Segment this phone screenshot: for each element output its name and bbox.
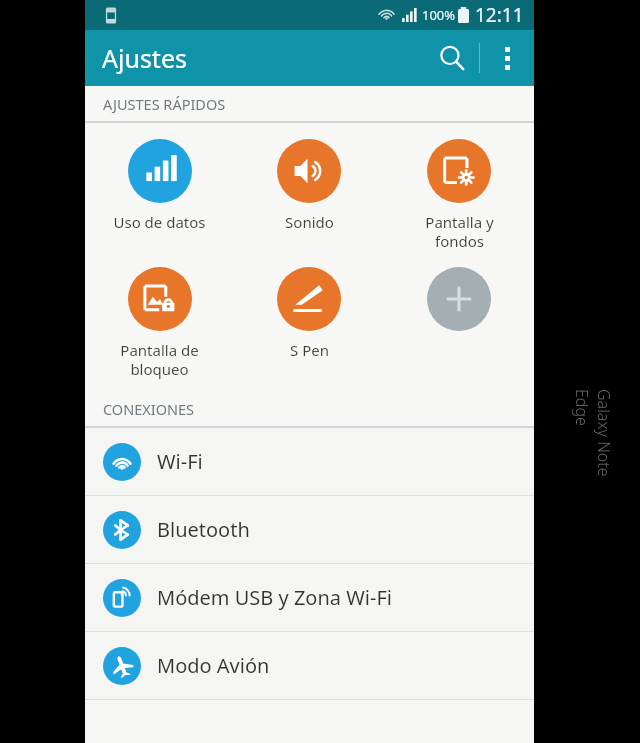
staticText: Galaxy Note Edge <box>571 389 615 495</box>
button[interactable]: S Pen <box>234 265 384 360</box>
staticText: Pantalla de bloqueo <box>120 340 199 379</box>
button[interactable]: Módem USB y Zona Wi-Fi <box>85 564 534 631</box>
staticText: S Pen <box>290 340 329 360</box>
button[interactable]: Uso de datos <box>85 137 234 232</box>
button[interactable]: Buscar <box>425 31 479 85</box>
button[interactable]: Wi-Fi <box>85 428 534 495</box>
button[interactable]: Sonido <box>234 137 384 232</box>
staticText: AJUSTES RÁPIDOS <box>103 94 226 114</box>
staticText: Modo Avión <box>157 652 270 679</box>
staticText: 100% <box>422 6 456 24</box>
staticText: Módem USB y Zona Wi-Fi <box>157 584 392 611</box>
button[interactable]: Añadir ajuste <box>384 265 534 359</box>
staticText: Bluetooth <box>157 516 250 543</box>
button[interactable]: Más opciones <box>480 31 534 85</box>
staticText: Ajustes <box>102 41 187 75</box>
button[interactable]: Pantalla de bloqueo <box>85 265 234 379</box>
button[interactable]: Bluetooth <box>85 496 534 563</box>
staticText: Uso de datos <box>113 212 206 232</box>
button[interactable]: Pantalla y fondos <box>384 137 534 251</box>
button[interactable]: Modo Avión <box>85 632 534 699</box>
staticText: Sonido <box>285 212 334 232</box>
staticText: 12:11 <box>475 2 524 28</box>
staticText: Wi-Fi <box>157 448 203 475</box>
staticText: CONEXIONES <box>103 399 195 419</box>
staticText: Pantalla y fondos <box>425 212 494 251</box>
